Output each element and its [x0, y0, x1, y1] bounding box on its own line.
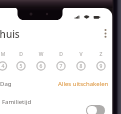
button[interactable]: D	[12, 51, 30, 71]
staticText: 7	[52, 63, 70, 70]
staticText: W	[32, 51, 50, 58]
staticText: D	[12, 51, 30, 58]
button[interactable]: M	[0, 51, 12, 71]
button[interactable]: Z	[92, 51, 110, 71]
staticText: Thuis	[0, 27, 20, 41]
staticText: 4	[0, 63, 12, 70]
button[interactable]: Familietijd toggle	[86, 105, 105, 114]
button[interactable]: V	[72, 51, 90, 71]
staticText: 6	[32, 63, 50, 70]
staticText: Dag	[0, 80, 12, 88]
staticText: Z	[92, 51, 110, 58]
staticText: Alles uitschakelen	[58, 80, 109, 88]
staticText: 5	[12, 63, 30, 70]
button[interactable]: Alles uitschakelen	[58, 80, 109, 88]
staticText: M	[0, 51, 12, 58]
button[interactable]: More options	[99, 27, 111, 39]
staticText: D	[52, 51, 70, 58]
button[interactable]: W	[32, 51, 50, 71]
staticText: 9	[92, 63, 110, 70]
button[interactable]: D	[52, 51, 70, 71]
staticText: 8	[72, 63, 90, 70]
staticText: V	[72, 51, 90, 58]
staticText: Familietijd	[2, 98, 32, 106]
